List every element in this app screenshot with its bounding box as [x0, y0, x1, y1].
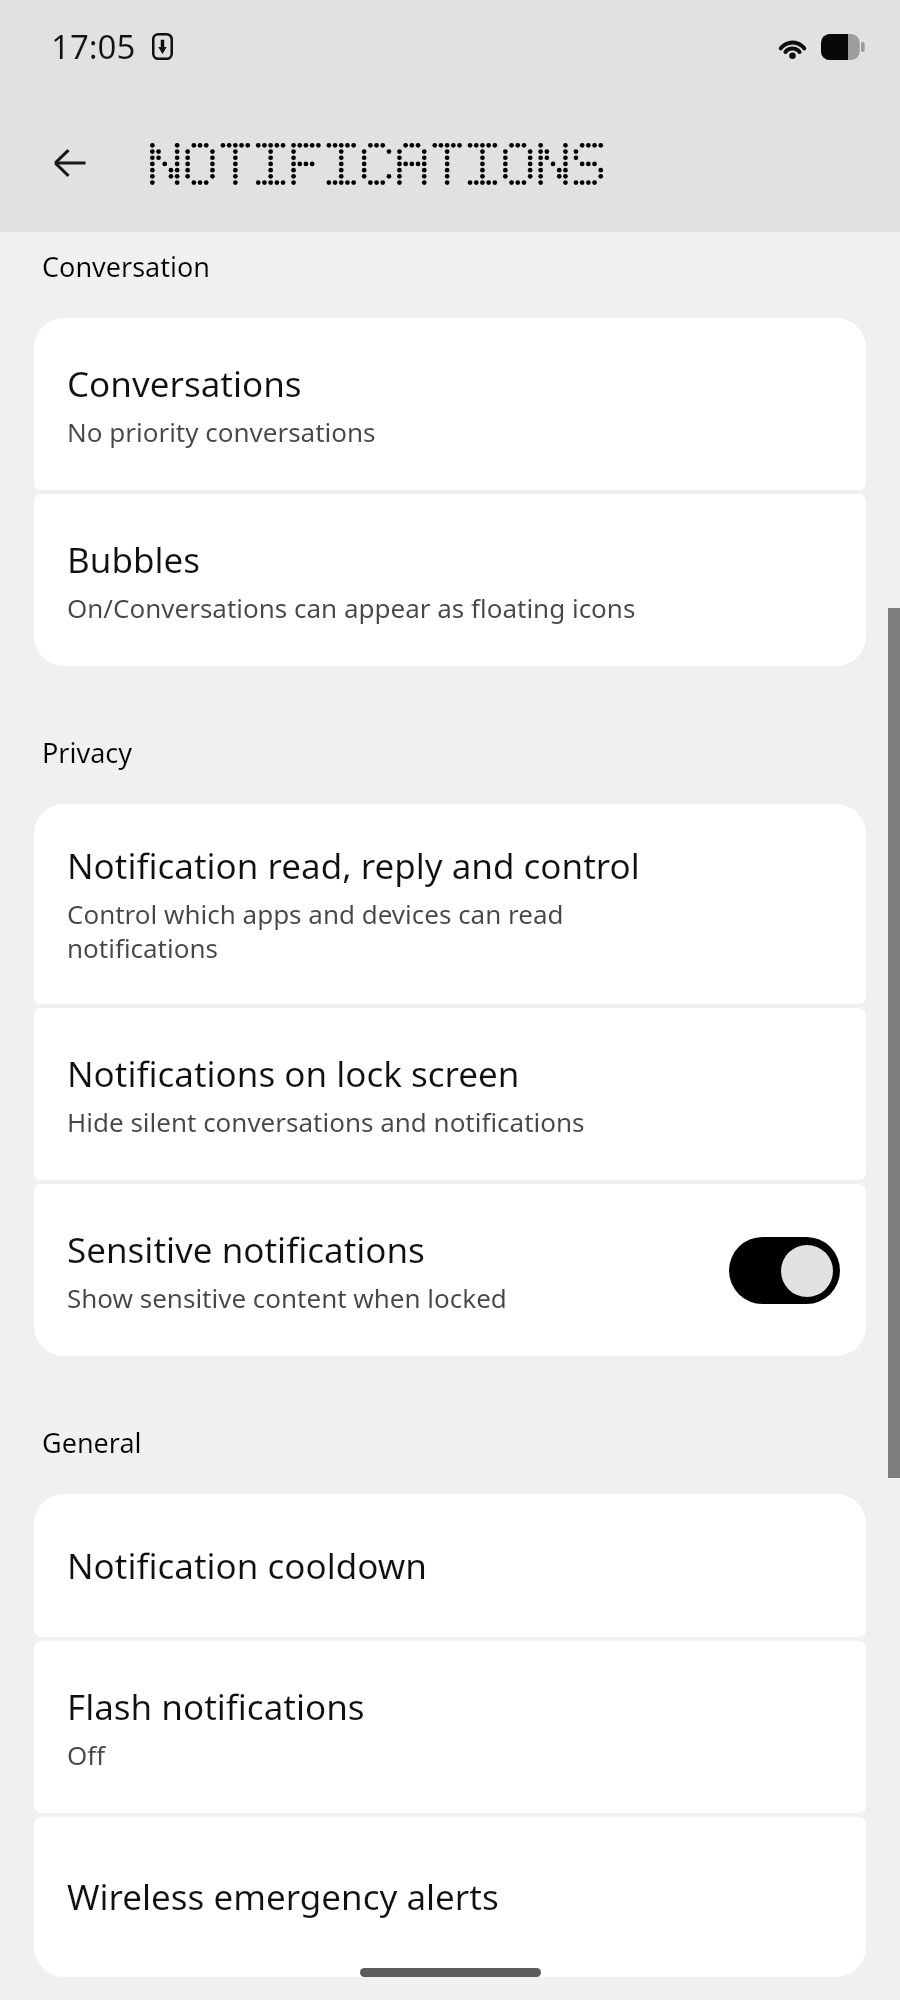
staticText: Conversation	[42, 248, 210, 285]
staticText: Off	[67, 1737, 106, 1772]
button[interactable]: Conversations	[34, 318, 866, 490]
staticText: General	[42, 1424, 142, 1461]
staticText: 17:05	[51, 24, 136, 69]
staticText: Hide silent conversations and notificati…	[67, 1104, 585, 1139]
button[interactable]: Wireless emergency alerts	[34, 1817, 866, 1977]
button[interactable]: Bubbles	[34, 494, 866, 666]
staticText: Wireless emergency alerts	[67, 1873, 499, 1921]
staticText: Sensitive notifications	[67, 1226, 425, 1274]
button[interactable]: Flash notifications	[34, 1641, 866, 1813]
button[interactable]: Sensitive notifications toggle	[729, 1237, 840, 1304]
staticText: On/Conversations can appear as floating …	[67, 590, 636, 625]
staticText: Notification read, reply and control	[67, 842, 640, 890]
staticText: Flash notifications	[67, 1683, 365, 1731]
button[interactable]: Notification read, reply and control	[34, 804, 866, 1004]
button[interactable]: Back	[43, 136, 97, 190]
staticText: Control which apps and devices can read …	[67, 896, 564, 966]
staticText: Conversations	[67, 360, 302, 408]
button[interactable]: Sensitive notifications	[34, 1184, 866, 1356]
button[interactable]: Notifications on lock screen	[34, 1008, 866, 1180]
button[interactable]: Notification cooldown	[34, 1494, 866, 1637]
staticText: Bubbles	[67, 536, 200, 584]
staticText: No priority conversations	[67, 414, 376, 449]
staticText: Privacy	[42, 734, 133, 771]
staticText: Show sensitive content when locked	[67, 1280, 507, 1315]
staticText: Notifications on lock screen	[67, 1050, 520, 1098]
staticText: Notification cooldown	[67, 1542, 427, 1590]
